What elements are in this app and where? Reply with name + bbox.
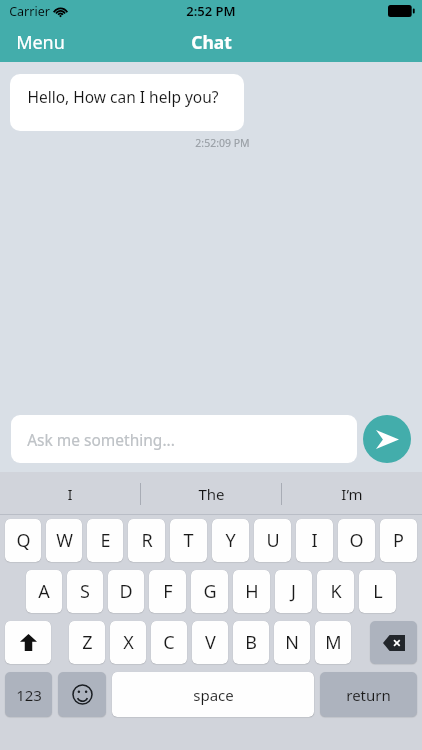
button[interactable]: I — [0, 472, 140, 515]
staticText: R — [141, 528, 153, 553]
button[interactable]: K — [317, 570, 354, 613]
staticText: O — [349, 528, 364, 553]
staticText: Q — [16, 528, 31, 553]
button[interactable]: return — [320, 672, 417, 717]
staticText: Menu — [16, 30, 65, 55]
staticText: 2:52 PM — [186, 2, 236, 20]
button[interactable]: Y — [212, 519, 249, 562]
button[interactable]: Shift — [5, 621, 51, 664]
staticText: C — [163, 630, 175, 655]
button[interactable]: O — [338, 519, 375, 562]
button[interactable]: A — [26, 570, 62, 613]
button[interactable]: 123 — [5, 672, 52, 717]
staticText: Carrier — [9, 3, 50, 20]
staticText: Ask me something... — [27, 429, 175, 450]
staticText: E — [100, 528, 111, 553]
button[interactable]: M — [315, 621, 351, 664]
staticText: J — [291, 579, 296, 604]
staticText: I — [67, 484, 73, 504]
button[interactable]: C — [151, 621, 187, 664]
staticText: I — [311, 528, 318, 553]
button[interactable]: F — [149, 570, 186, 613]
button[interactable]: Hello, How can I help you? — [10, 74, 244, 131]
staticText: K — [330, 579, 342, 604]
staticText: T — [183, 528, 194, 553]
staticText: X — [123, 630, 134, 655]
staticText: The — [198, 484, 225, 504]
button[interactable]: Q — [5, 519, 41, 562]
button[interactable]: R — [128, 519, 165, 562]
button[interactable]: L — [359, 570, 396, 613]
staticText: return — [346, 685, 391, 705]
button[interactable]: S — [67, 570, 103, 613]
button[interactable]: space — [112, 672, 314, 717]
button[interactable]: W — [46, 519, 82, 562]
button[interactable]: J — [275, 570, 312, 613]
button[interactable]: G — [191, 570, 228, 613]
button[interactable]: The — [141, 472, 281, 515]
staticText: P — [393, 528, 404, 553]
staticText: S — [80, 579, 90, 604]
staticText: Chat — [191, 30, 232, 54]
button[interactable]: Menu — [0, 26, 77, 59]
button[interactable]: U — [254, 519, 291, 562]
staticText: 123 — [16, 685, 42, 705]
staticText: G — [203, 579, 217, 604]
button[interactable]: T — [170, 519, 207, 562]
button[interactable]: E — [87, 519, 123, 562]
button[interactable]: Z — [69, 621, 105, 664]
button[interactable]: P — [380, 519, 417, 562]
staticText: H — [245, 579, 259, 604]
button[interactable]: I — [296, 519, 333, 562]
button[interactable]: X — [110, 621, 146, 664]
staticText: Y — [225, 528, 236, 553]
button[interactable]: N — [274, 621, 310, 664]
button[interactable]: H — [233, 570, 270, 613]
staticText: U — [266, 528, 280, 553]
button[interactable]: D — [108, 570, 144, 613]
button[interactable]: Send — [363, 415, 411, 463]
staticText: L — [373, 579, 383, 604]
staticText: V — [205, 630, 216, 655]
staticText: M — [325, 630, 342, 655]
staticText: D — [119, 579, 133, 604]
button[interactable]: Emoji — [58, 672, 106, 717]
button[interactable]: Backspace — [370, 621, 417, 664]
button[interactable]: I’m — [282, 472, 422, 515]
staticText: A — [38, 579, 50, 604]
staticText: F — [163, 579, 173, 604]
staticText: Z — [82, 630, 93, 655]
button[interactable]: B — [233, 621, 269, 664]
button[interactable]: Ask me something... — [11, 415, 357, 463]
staticText: N — [285, 630, 299, 655]
staticText: Hello, How can I help you? — [27, 86, 219, 107]
staticText: 2:52:09 PM — [195, 136, 250, 150]
staticText: B — [245, 630, 257, 655]
staticText: W — [56, 528, 73, 553]
staticText: space — [193, 685, 234, 705]
button[interactable]: V — [192, 621, 228, 664]
staticText: I’m — [341, 484, 363, 504]
